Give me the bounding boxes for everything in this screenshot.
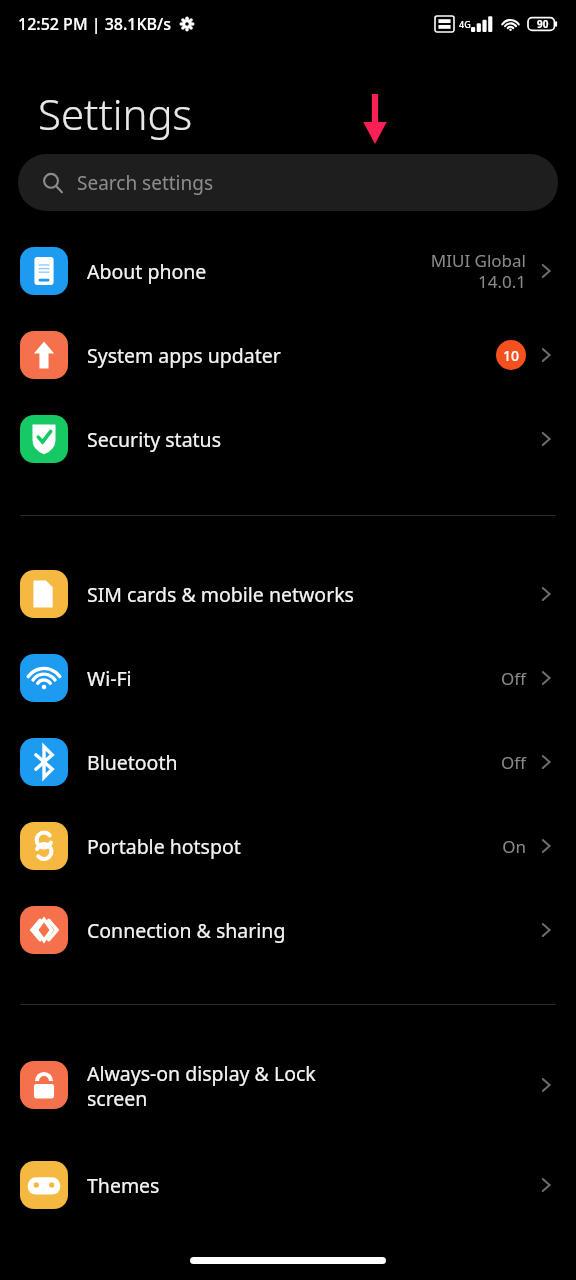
staticText: Themes <box>87 1172 526 1199</box>
staticText: 12:52 PM | 38.1KB/s <box>18 13 172 35</box>
button[interactable]: Search settings <box>18 154 558 211</box>
staticText: Bluetooth <box>87 749 493 776</box>
staticText: Off <box>501 667 526 690</box>
staticText: Security status <box>87 426 526 453</box>
staticText: Settings <box>38 85 193 142</box>
staticText: SIM cards & mobile networks <box>87 581 526 608</box>
staticText: Always-on display & Lock screen <box>87 1060 526 1111</box>
staticText: Portable hotspot <box>87 833 494 860</box>
button[interactable]: Themes <box>0 1143 576 1227</box>
staticText: MIUI Global 14.0.1 <box>430 249 526 293</box>
button[interactable]: About phone <box>0 229 576 313</box>
button[interactable]: SIM cards & mobile networks <box>0 552 576 636</box>
button[interactable]: Security status <box>0 397 576 481</box>
staticText: Connection & sharing <box>87 917 526 944</box>
staticText: On <box>502 835 526 858</box>
staticText: System apps updater <box>87 342 488 369</box>
staticText: Wi-Fi <box>87 665 493 692</box>
button[interactable]: Portable hotspot <box>0 804 576 888</box>
staticText: 10 <box>503 346 520 365</box>
button[interactable]: Connection & sharing <box>0 888 576 972</box>
button[interactable]: Wi-Fi <box>0 636 576 720</box>
button[interactable]: Always-on display & Lock screen <box>0 1037 576 1133</box>
staticText: 4G <box>459 18 471 30</box>
staticText: 90 <box>537 17 549 31</box>
staticText: Off <box>501 751 526 774</box>
staticText: Search settings <box>77 170 214 196</box>
staticText: About phone <box>87 258 422 285</box>
button[interactable]: System apps updater <box>0 313 576 397</box>
button[interactable]: Bluetooth <box>0 720 576 804</box>
